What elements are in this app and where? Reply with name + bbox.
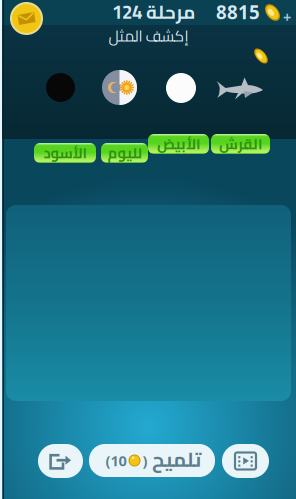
button[interactable]: Watch video xyxy=(222,444,269,478)
staticText: 8815 xyxy=(216,0,260,24)
staticText: الأبيض xyxy=(156,130,200,158)
button[interactable]: لليوم xyxy=(101,143,148,163)
button[interactable]: الأبيض xyxy=(148,134,209,154)
staticText: الأسود xyxy=(43,139,87,167)
staticText: + xyxy=(283,7,291,27)
staticText: القرش xyxy=(218,130,262,158)
button[interactable]: الأسود xyxy=(34,143,96,163)
button[interactable]: القرش xyxy=(211,134,270,154)
staticText: تلميح xyxy=(151,441,200,478)
staticText: مرحلة 124 xyxy=(111,0,194,29)
button[interactable]: (10 xyxy=(89,444,215,477)
staticText: لليوم xyxy=(107,139,142,167)
staticText: (10 xyxy=(105,451,126,470)
staticText: إكشف المثل xyxy=(108,22,188,50)
button[interactable]: Mail xyxy=(9,1,44,36)
staticText: ) xyxy=(142,451,147,470)
button[interactable]: Share xyxy=(38,444,83,478)
button[interactable]: Buy coins xyxy=(281,11,293,23)
